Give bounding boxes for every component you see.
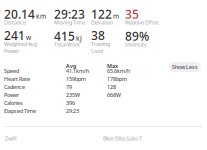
staticText: Weighted Avg Power <box>4 40 37 55</box>
staticText: Training Load <box>91 40 110 55</box>
staticText: Power <box>4 91 19 99</box>
staticText: 122 <box>91 6 112 22</box>
staticText: 668W <box>107 91 121 99</box>
button[interactable]: Show Less <box>169 62 201 72</box>
staticText: Relative Effort <box>125 19 159 26</box>
staticText: Distance <box>4 19 26 26</box>
staticText: 128 <box>107 83 116 91</box>
staticText: 178bpm <box>107 75 127 83</box>
staticText: Cadence <box>4 83 25 91</box>
staticText: 159bpm <box>66 75 86 83</box>
staticText: m <box>113 12 119 21</box>
staticText: 235W <box>66 91 80 99</box>
staticText: 396 <box>66 99 75 107</box>
staticText: Intensity <box>125 41 147 48</box>
staticText: 89% <box>125 28 149 44</box>
staticText: Show Less <box>172 63 198 71</box>
staticText: 29:23 <box>54 6 85 22</box>
staticText: Elapsed Time <box>4 107 36 115</box>
staticText: 29:23 <box>66 107 79 115</box>
staticText: 20.14 <box>4 6 35 22</box>
staticText: w <box>26 33 31 42</box>
staticText: Elevation <box>91 19 113 26</box>
staticText: Heart Rate <box>4 75 30 83</box>
staticText: Avg <box>66 62 76 70</box>
staticText: Bike: Elite Suito T <box>103 135 142 142</box>
staticText: Total Work <box>54 41 80 48</box>
staticText: 241 <box>4 27 25 43</box>
staticText: Moving Time <box>54 19 85 26</box>
staticText: 35 <box>125 6 139 22</box>
staticText: kJ <box>76 34 82 43</box>
staticText: Max <box>107 62 118 70</box>
staticText: 38 <box>91 27 105 43</box>
staticText: Speed <box>4 67 19 75</box>
staticText: 65.6km/h <box>107 67 130 75</box>
staticText: 41.1km/h <box>66 67 89 75</box>
staticText: Zwift <box>5 135 17 142</box>
staticText: km <box>36 12 46 21</box>
staticText: Calories <box>4 99 23 107</box>
staticText: 79 <box>66 83 72 91</box>
staticText: 415 <box>54 28 75 44</box>
